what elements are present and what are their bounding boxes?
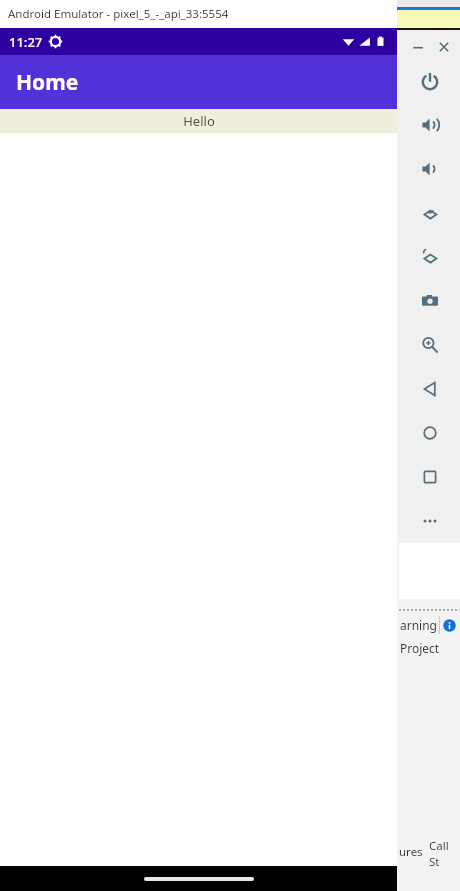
button[interactable]: Back [417, 376, 443, 402]
button[interactable]: Zoom [417, 332, 443, 358]
button[interactable]: Volume down [417, 156, 443, 182]
button[interactable]: Hello [0, 109, 397, 133]
button[interactable]: Home gesture [144, 877, 254, 881]
button[interactable]: Home [0, 55, 397, 109]
button[interactable]: Minimize [407, 36, 429, 58]
button[interactable]: Rotate right [417, 244, 443, 270]
button[interactable]: More [417, 508, 443, 534]
button[interactable]: Close [433, 36, 455, 58]
button[interactable]: Overview [417, 464, 443, 490]
button[interactable]: Home [417, 420, 443, 446]
staticText: Hello [183, 112, 215, 130]
button[interactable]: Power [417, 68, 443, 94]
button[interactable]: Project [400, 640, 440, 656]
button[interactable]: Volume up [417, 112, 443, 138]
button[interactable]: Rotate left [417, 200, 443, 226]
staticText: Home [16, 68, 79, 97]
staticText: Call St [429, 838, 460, 866]
button[interactable]: Screenshot [417, 288, 443, 314]
staticText: Android Emulator - pixel_5_-_api_33:5554 [8, 6, 229, 22]
staticText: arning [400, 617, 437, 633]
staticText: 11:27 [9, 33, 43, 51]
button[interactable]: Info [443, 619, 456, 632]
staticText: ures [399, 844, 423, 860]
